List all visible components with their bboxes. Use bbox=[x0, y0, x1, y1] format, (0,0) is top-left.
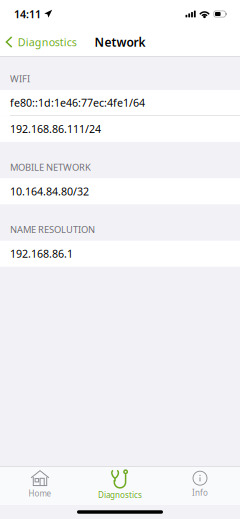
staticText: fe80::1d:1e46:77ec:4fe1/64 bbox=[10, 96, 145, 110]
staticText: MOBILE NETWORK bbox=[10, 161, 91, 173]
staticText: NAME RESOLUTION bbox=[10, 223, 95, 236]
staticText: 192.168.86.111/24 bbox=[10, 122, 101, 136]
button[interactable]: Diagnostics bbox=[80, 467, 160, 505]
staticText: Info bbox=[192, 487, 208, 498]
staticText: Diagnostics bbox=[18, 35, 77, 49]
staticText: Diagnostics bbox=[98, 490, 142, 500]
button[interactable]: fe80::1d:1e46:77ec:4fe1/64 bbox=[0, 90, 240, 116]
staticText: 10.164.84.80/32 bbox=[10, 184, 89, 198]
button[interactable]: 192.168.86.1 bbox=[0, 241, 240, 267]
button[interactable]: Back to Diagnostics bbox=[0, 30, 77, 54]
button[interactable]: 192.168.86.111/24 bbox=[0, 116, 240, 142]
button[interactable]: Home bbox=[0, 467, 80, 505]
staticText: WIFI bbox=[10, 72, 30, 85]
button[interactable]: 10.164.84.80/32 bbox=[0, 178, 240, 204]
staticText: 14:11 bbox=[14, 7, 41, 21]
staticText: Network bbox=[94, 34, 145, 50]
staticText: Home bbox=[28, 488, 51, 499]
staticText: 192.168.86.1 bbox=[10, 247, 73, 261]
button[interactable]: Info bbox=[160, 467, 240, 505]
